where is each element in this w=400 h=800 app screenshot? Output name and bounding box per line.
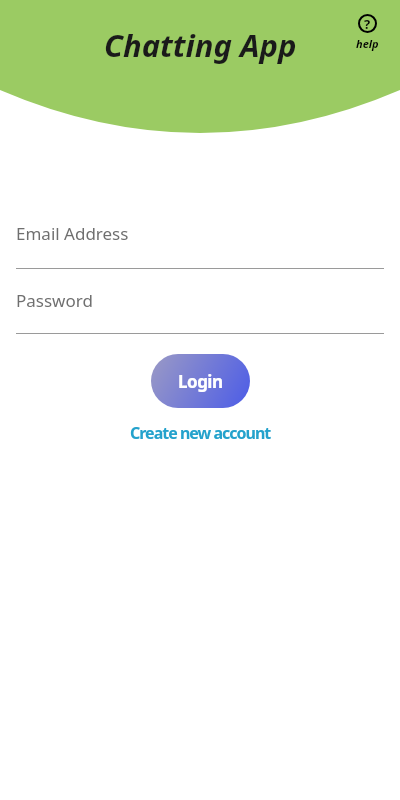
button[interactable]: Login — [151, 354, 250, 408]
staticText: help — [356, 36, 379, 51]
staticText: Email Address — [16, 222, 129, 245]
staticText: Password — [16, 289, 93, 312]
staticText: ? — [364, 15, 371, 33]
staticText: Chatting App — [104, 24, 297, 66]
button[interactable]: Create new account — [130, 422, 271, 444]
button[interactable]: Password — [0, 289, 400, 334]
staticText: Login — [178, 370, 223, 393]
button[interactable]: Email Address — [0, 222, 400, 269]
button[interactable]: ? — [356, 14, 379, 51]
